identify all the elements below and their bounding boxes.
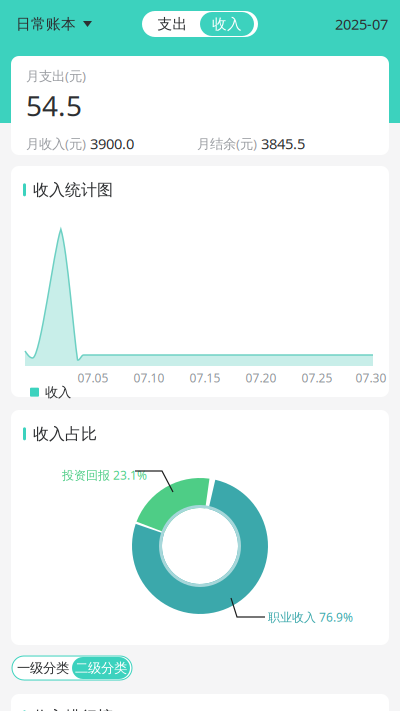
staticText: 一级分类 [17,660,69,676]
staticText: 支出 [157,15,187,33]
staticText: 07.20 [245,370,276,386]
button[interactable]: 日常账本 [0,7,102,41]
staticText: 07.25 [301,370,332,386]
staticText: 2025-07 [335,14,388,34]
staticText: 07.05 [77,370,108,386]
button[interactable]: 二级分类 [72,657,130,679]
staticText: 收入占比 [33,424,97,444]
staticText: 月收入(元) [26,135,86,152]
button[interactable]: 支出 [145,12,200,36]
staticText: 收入排行榜 [33,707,113,711]
staticText: 收入统计图 [33,180,113,200]
staticText: 54.5 [26,87,82,124]
staticText: 月结余(元) [197,135,257,152]
staticText: 3845.5 [257,134,305,153]
staticText: 投资回报 23.1% [62,467,147,483]
staticText: 07.15 [189,370,220,386]
staticText: 07.10 [133,370,164,386]
staticText: 月支出(元) [26,67,86,85]
staticText: 07.30 [355,370,386,386]
staticText: 职业收入 76.9% [268,609,353,625]
button[interactable]: 2025-07 [328,13,388,35]
staticText: 3900.0 [86,134,134,153]
staticText: 二级分类 [75,660,127,676]
button[interactable]: 收入 [200,12,254,36]
staticText: 收入 [212,15,242,33]
staticText: 日常账本 [16,15,76,33]
staticText: 收入 [45,384,71,400]
button[interactable]: 一级分类 [14,656,72,680]
